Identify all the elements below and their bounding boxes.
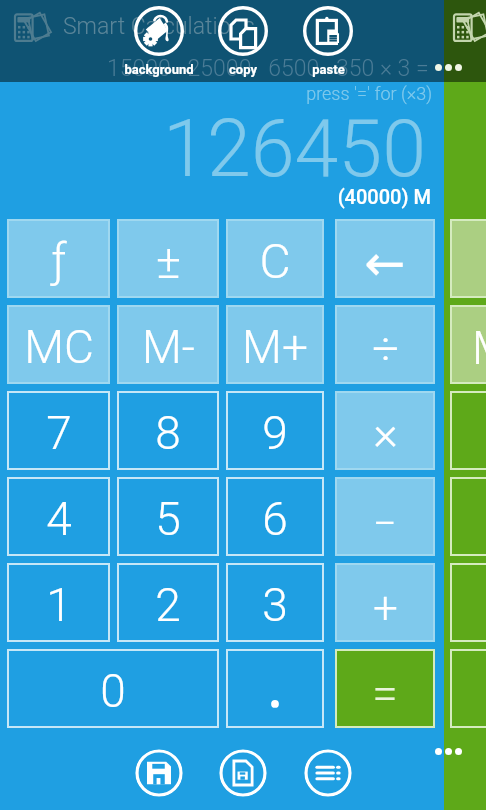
staticText: ƒ bbox=[51, 234, 67, 288]
button[interactable]: Save to file bbox=[219, 749, 267, 797]
button[interactable]: + bbox=[335, 563, 435, 642]
staticText: 6 bbox=[262, 492, 288, 546]
button[interactable]: 4 bbox=[7, 477, 110, 556]
staticText: M+ bbox=[242, 320, 308, 374]
button[interactable]: background bbox=[104, 0, 214, 80]
staticText: 0 bbox=[100, 664, 126, 718]
staticText: ← bbox=[364, 235, 406, 292]
staticText: press '=' for (×3) bbox=[0, 83, 432, 104]
button[interactable]: 9 bbox=[226, 391, 324, 470]
button[interactable]: copy bbox=[188, 0, 298, 80]
staticText: 5 bbox=[155, 492, 181, 546]
staticText: (40000) M bbox=[0, 185, 431, 208]
staticText: paste bbox=[312, 62, 345, 77]
button[interactable]: 1 bbox=[7, 563, 110, 642]
button[interactable]: 6 bbox=[226, 477, 324, 556]
staticText: ± bbox=[156, 234, 181, 289]
staticText: 7 bbox=[46, 406, 72, 460]
staticText: + bbox=[373, 582, 398, 634]
staticText: = bbox=[372, 666, 398, 720]
staticText: 8 bbox=[155, 406, 181, 460]
button[interactable]: = bbox=[335, 649, 435, 728]
button[interactable]: 2 bbox=[117, 563, 219, 642]
button[interactable]: 8 bbox=[117, 391, 219, 470]
button[interactable]: Save bbox=[135, 749, 183, 797]
staticText: 1 bbox=[46, 578, 72, 632]
staticText: 3 bbox=[262, 578, 288, 632]
button[interactable]: ÷ bbox=[335, 305, 435, 384]
staticText: Smart Calculations bbox=[63, 13, 255, 40]
button[interactable]: 5 bbox=[117, 477, 219, 556]
button[interactable]: decimal point bbox=[226, 649, 324, 728]
staticText: 15000 25000 6500 350 × 3 = bbox=[107, 55, 429, 82]
button[interactable]: − bbox=[335, 477, 435, 556]
button[interactable]: × bbox=[335, 391, 435, 470]
button[interactable]: C bbox=[226, 219, 324, 298]
button[interactable]: History bbox=[304, 749, 352, 797]
staticText: copy bbox=[229, 62, 257, 77]
staticText: ÷ bbox=[372, 321, 399, 376]
staticText: × bbox=[373, 405, 398, 460]
button[interactable]: 7 bbox=[7, 391, 110, 470]
staticText: M- bbox=[142, 320, 195, 374]
button[interactable]: paste bbox=[273, 0, 383, 80]
button[interactable]: ƒ bbox=[7, 219, 110, 298]
staticText: C bbox=[259, 233, 291, 289]
staticText: 9 bbox=[262, 406, 288, 460]
staticText: − bbox=[373, 499, 397, 548]
button[interactable]: 0 bbox=[7, 649, 219, 728]
staticText: background bbox=[124, 62, 194, 77]
button[interactable]: M- bbox=[117, 305, 219, 384]
staticText: 2 bbox=[155, 578, 181, 632]
staticText: 4 bbox=[46, 492, 72, 546]
button[interactable]: ← bbox=[335, 219, 435, 298]
button[interactable]: MC bbox=[7, 305, 110, 384]
button[interactable]: M+ bbox=[226, 305, 324, 384]
staticText: MC bbox=[24, 320, 94, 374]
staticText: M bbox=[472, 321, 486, 375]
button[interactable]: 3 bbox=[226, 563, 324, 642]
button[interactable]: ± bbox=[117, 219, 219, 298]
staticText: 126450 bbox=[0, 103, 426, 196]
